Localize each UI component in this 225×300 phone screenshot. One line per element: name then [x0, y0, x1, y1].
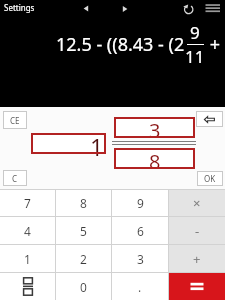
button[interactable]: 6 [112, 217, 168, 244]
button[interactable]: 4 [0, 217, 55, 244]
staticText: 8 [149, 148, 161, 172]
staticText: OK [204, 173, 216, 184]
button[interactable] [169, 273, 225, 300]
staticText: 1 [90, 131, 104, 158]
button[interactable]: CE [3, 111, 27, 129]
staticText: 9 [137, 195, 144, 211]
staticText: + [205, 32, 220, 57]
button[interactable]: 1 [31, 133, 106, 154]
staticText: 6 [137, 223, 144, 239]
staticText: CE [10, 115, 20, 126]
staticText: 8 [80, 195, 87, 211]
button[interactable]: 7 [0, 190, 55, 216]
staticText: 3 [137, 251, 144, 267]
staticText: 2 [80, 251, 87, 267]
staticText: 11 [185, 45, 205, 68]
button[interactable]: 2 [56, 245, 111, 272]
button[interactable]: 3 [112, 245, 168, 272]
staticText: 9 [190, 21, 200, 44]
button[interactable] [119, 3, 131, 15]
staticText: 0 [80, 279, 87, 295]
button[interactable]: 3 [114, 117, 195, 138]
button[interactable] [204, 3, 222, 15]
staticText: 5 [80, 223, 87, 239]
button[interactable]: C [3, 170, 27, 186]
button[interactable]: OK [197, 171, 223, 186]
staticText: × [193, 194, 201, 212]
staticText: 1 [24, 251, 31, 267]
button[interactable] [0, 273, 55, 300]
staticText: 12.5 - ((8.43 - (2 [56, 32, 185, 57]
staticText: Settings [4, 2, 35, 13]
staticText: . [138, 279, 142, 295]
staticText: 7 [24, 195, 31, 211]
button[interactable]: 1 [0, 245, 55, 272]
button[interactable]: . [112, 273, 168, 300]
button[interactable] [181, 2, 196, 16]
staticText: 4 [24, 223, 31, 239]
button[interactable]: + [169, 245, 225, 272]
staticText: - [195, 222, 200, 240]
button[interactable]: 0 [56, 273, 111, 300]
button[interactable] [196, 111, 223, 127]
staticText: + [193, 250, 201, 268]
staticText: 3 [149, 117, 161, 141]
button[interactable]: 9 [112, 190, 168, 216]
staticText: C [12, 173, 18, 184]
button[interactable]: Settings [0, 0, 35, 13]
button[interactable]: 5 [56, 217, 111, 244]
button[interactable]: 8 [56, 190, 111, 216]
button[interactable]: - [169, 217, 225, 244]
button[interactable] [80, 3, 92, 15]
button[interactable]: 8 [114, 148, 195, 169]
button[interactable]: × [169, 190, 225, 216]
